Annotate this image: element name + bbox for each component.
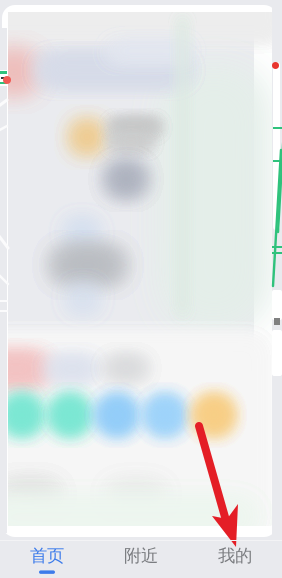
staticText: 我的	[218, 545, 252, 566]
staticText: 首页	[30, 545, 64, 566]
button[interactable]: 首页	[0, 541, 94, 578]
button[interactable]: 附近	[94, 541, 188, 578]
staticText: 附近	[124, 545, 158, 566]
button[interactable]: 我的	[188, 541, 282, 578]
